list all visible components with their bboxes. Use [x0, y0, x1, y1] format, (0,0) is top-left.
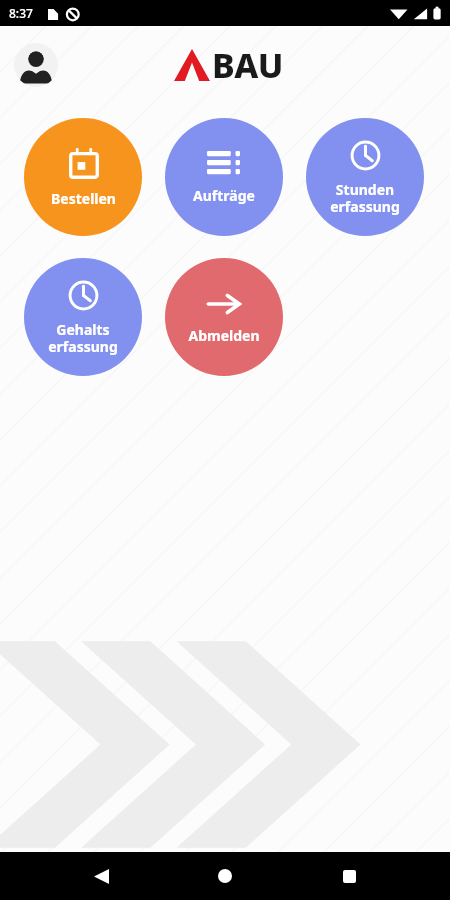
staticText: Stunden erfassung: [330, 180, 400, 216]
button[interactable]: Abmelden: [165, 258, 283, 376]
staticText: Abmelden: [188, 326, 260, 345]
button[interactable]: Gehalts erfassung: [24, 258, 142, 376]
button[interactable]: Profile: [14, 43, 58, 87]
staticText: 8:37: [9, 5, 33, 21]
staticText: Bestellen: [51, 189, 116, 208]
button[interactable]: Back: [78, 853, 124, 899]
button[interactable]: Bestellen: [24, 118, 142, 236]
staticText: Gehalts erfassung: [48, 320, 118, 356]
button[interactable]: Home: [202, 853, 248, 899]
staticText: Aufträge: [193, 186, 255, 205]
button[interactable]: Stunden erfassung: [306, 118, 424, 236]
button[interactable]: Recent apps: [326, 853, 372, 899]
button[interactable]: Aufträge: [165, 118, 283, 236]
staticText: BAU: [212, 42, 284, 88]
